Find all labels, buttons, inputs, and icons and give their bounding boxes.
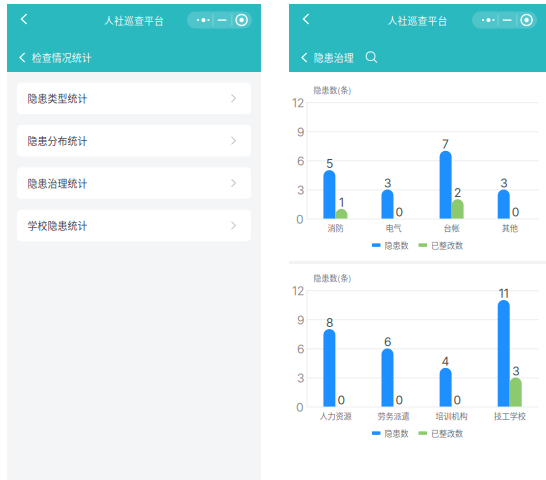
staticText: 隐患数(条) xyxy=(313,84,351,95)
staticText: 学校隐患统计 xyxy=(27,218,87,233)
staticText: 6 xyxy=(384,335,391,349)
staticText: 3 xyxy=(512,364,519,378)
staticText: 隐患数 xyxy=(384,427,408,439)
staticText: 0 xyxy=(512,205,520,219)
button[interactable]: More options xyxy=(472,11,537,28)
button[interactable]: 学校隐患统计 xyxy=(17,210,251,241)
staticText: 0 xyxy=(454,393,462,407)
staticText: 其他 xyxy=(502,222,518,233)
staticText: 2 xyxy=(454,185,461,200)
staticText: 12 xyxy=(292,96,304,110)
staticText: 9 xyxy=(297,313,304,327)
staticText: 已整改数 xyxy=(431,427,463,439)
staticText: 已整改数 xyxy=(431,239,463,251)
staticText: 检查情况统计 xyxy=(32,50,92,65)
button[interactable]: 隐患治理统计 xyxy=(17,167,251,199)
staticText: 11 xyxy=(499,286,509,301)
button[interactable]: Back xyxy=(10,6,38,32)
staticText: 0 xyxy=(395,205,403,219)
staticText: 技工学校 xyxy=(494,410,526,421)
staticText: 隐患治理统计 xyxy=(27,176,87,190)
staticText: 12 xyxy=(292,284,304,298)
button[interactable]: Search xyxy=(365,51,377,63)
staticText: 0 xyxy=(395,393,403,407)
staticText: 隐患数 xyxy=(384,239,408,251)
staticText: 隐患类型统计 xyxy=(27,91,87,105)
staticText: 9 xyxy=(297,125,304,139)
staticText: 6 xyxy=(297,154,304,168)
staticText: 5 xyxy=(326,156,333,171)
staticText: 3 xyxy=(297,183,304,197)
button[interactable]: 隐患类型统计 xyxy=(17,82,251,114)
staticText: 0 xyxy=(337,393,345,407)
button[interactable]: 检查情况统计 xyxy=(20,47,92,67)
staticText: 隐患治理 xyxy=(314,50,354,65)
staticText: 1 xyxy=(339,195,344,210)
staticText: 劳务派遣 xyxy=(377,410,409,421)
staticText: 3 xyxy=(297,371,304,385)
staticText: 隐患数(条) xyxy=(313,272,351,283)
button[interactable]: Back xyxy=(292,6,320,32)
staticText: 3 xyxy=(500,176,507,190)
staticText: 隐患分布统计 xyxy=(27,134,87,148)
staticText: 人社巡查平台 xyxy=(104,14,164,28)
staticText: 0 xyxy=(296,400,304,414)
staticText: 6 xyxy=(297,342,304,356)
staticText: 消防 xyxy=(327,222,343,233)
staticText: 8 xyxy=(326,315,333,330)
button[interactable]: More options xyxy=(187,11,252,28)
staticText: 3 xyxy=(384,176,391,190)
staticText: 7 xyxy=(442,137,449,151)
staticText: 0 xyxy=(296,212,304,226)
staticText: 人力资源 xyxy=(319,410,351,421)
staticText: 4 xyxy=(442,354,450,369)
staticText: 电气 xyxy=(385,222,401,233)
button[interactable]: 隐患治理 xyxy=(302,47,354,67)
staticText: 台帐 xyxy=(444,222,460,233)
staticText: 培训机构 xyxy=(436,410,468,421)
button[interactable]: 隐患分布统计 xyxy=(17,125,251,156)
staticText: 人社巡查平台 xyxy=(387,14,447,28)
